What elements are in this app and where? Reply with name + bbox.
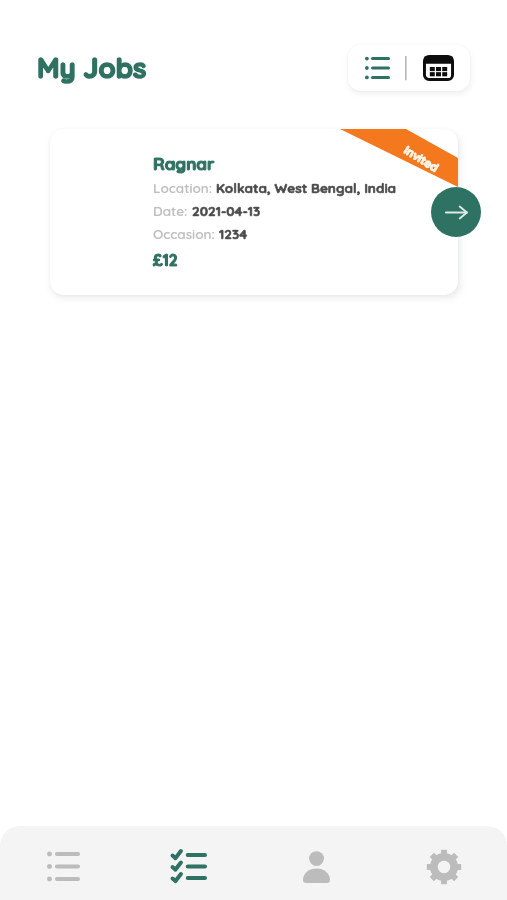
staticText: Invited — [402, 142, 441, 174]
staticText: Location: — [153, 179, 216, 196]
staticText: 1234 — [219, 225, 248, 242]
staticText: £12 — [153, 250, 178, 269]
staticText: Ragnar — [153, 153, 215, 174]
staticText: Kolkata, West Bengal, India — [216, 179, 397, 196]
button[interactable]: List view — [348, 45, 406, 91]
staticText: 1234 — [219, 225, 248, 242]
staticText: My Jobs — [37, 50, 147, 84]
button[interactable]: My tasks — [126, 833, 253, 900]
staticText: 2021-04-13 — [192, 202, 261, 219]
button[interactable]: Jobs list — [0, 833, 126, 900]
button[interactable]: Profile — [253, 833, 380, 900]
staticText: Kolkata, West Bengal, India — [216, 179, 397, 196]
staticText: £12 — [153, 250, 178, 269]
staticText: Invited — [402, 142, 441, 174]
button[interactable]: Settings — [380, 833, 507, 900]
staticText: Occasion: — [153, 225, 219, 242]
staticText: Ragnar — [153, 153, 215, 174]
button[interactable]: Calendar view — [406, 45, 470, 91]
button[interactable]: Open job — [431, 187, 481, 237]
button[interactable]: Ragnar — [50, 129, 458, 295]
staticText: My Jobs — [37, 50, 147, 84]
staticText: 2021-04-13 — [192, 202, 261, 219]
staticText: Date: — [153, 202, 192, 219]
